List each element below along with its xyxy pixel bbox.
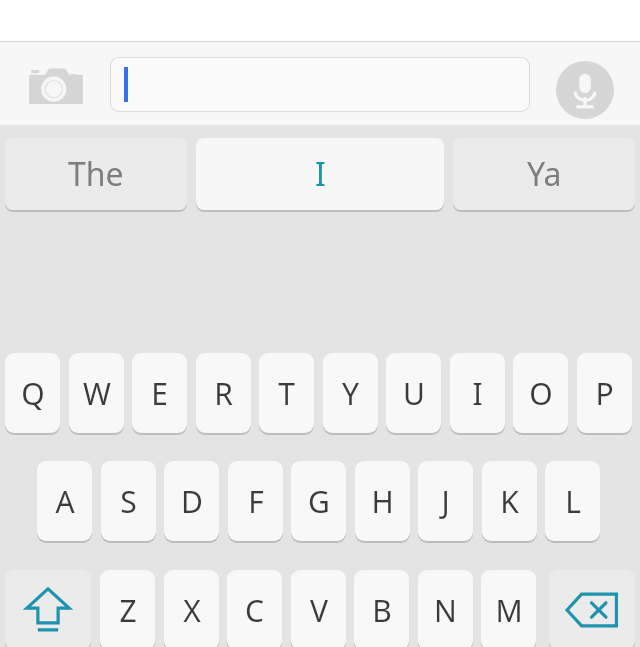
button[interactable]: J — [418, 461, 473, 541]
button[interactable]: Shift — [5, 570, 91, 647]
button[interactable]: S — [101, 461, 156, 541]
staticText: A — [55, 481, 75, 522]
staticText: C — [245, 590, 264, 631]
button[interactable]: D — [164, 461, 219, 541]
button[interactable]: G — [291, 461, 346, 541]
staticText: Z — [119, 590, 137, 631]
staticText: I — [315, 152, 326, 196]
staticText: U — [403, 373, 425, 414]
button[interactable]: Backspace — [549, 570, 635, 647]
staticText: J — [441, 481, 450, 522]
staticText: K — [500, 481, 519, 522]
button[interactable]: Ya — [453, 138, 635, 210]
button[interactable]: I — [450, 353, 505, 433]
staticText: X — [183, 590, 201, 631]
button[interactable]: M — [481, 570, 536, 647]
button[interactable]: Y — [323, 353, 378, 433]
button[interactable]: Camera — [24, 64, 88, 108]
button[interactable]: X — [164, 570, 219, 647]
button[interactable]: Z — [100, 570, 155, 647]
staticText: M — [495, 590, 523, 631]
button[interactable]: K — [482, 461, 537, 541]
button[interactable] — [110, 57, 530, 112]
staticText: I — [472, 373, 483, 414]
button[interactable]: F — [228, 461, 283, 541]
button[interactable]: Q — [5, 353, 60, 433]
staticText: O — [529, 373, 553, 414]
staticText: F — [248, 481, 264, 522]
button[interactable]: The — [5, 138, 187, 210]
staticText: R — [214, 373, 233, 414]
staticText: V — [310, 590, 328, 631]
button[interactable]: O — [513, 353, 568, 433]
button[interactable]: A — [37, 461, 92, 541]
staticText: B — [372, 590, 392, 631]
staticText: W — [83, 373, 111, 414]
staticText: N — [434, 590, 457, 631]
button[interactable]: B — [354, 570, 409, 647]
staticText: The — [68, 152, 124, 196]
button[interactable]: T — [259, 353, 314, 433]
button[interactable]: R — [196, 353, 251, 433]
staticText: L — [565, 481, 581, 522]
button[interactable]: W — [69, 353, 124, 433]
button[interactable]: C — [227, 570, 282, 647]
button[interactable]: L — [545, 461, 600, 541]
staticText: H — [371, 481, 394, 522]
button[interactable]: E — [132, 353, 187, 433]
button[interactable]: Voice input — [556, 61, 614, 119]
staticText: Y — [342, 373, 359, 414]
staticText: D — [181, 481, 203, 522]
button[interactable]: V — [291, 570, 346, 647]
staticText: G — [308, 481, 330, 522]
button[interactable]: P — [577, 353, 632, 433]
staticText: S — [120, 481, 137, 522]
button[interactable]: I — [196, 138, 444, 210]
button[interactable]: H — [355, 461, 410, 541]
staticText: E — [151, 373, 168, 414]
button[interactable]: N — [418, 570, 473, 647]
staticText: P — [595, 373, 614, 414]
staticText: T — [278, 373, 295, 414]
button[interactable]: U — [386, 353, 441, 433]
staticText: Q — [21, 373, 45, 414]
staticText: Ya — [527, 152, 562, 196]
